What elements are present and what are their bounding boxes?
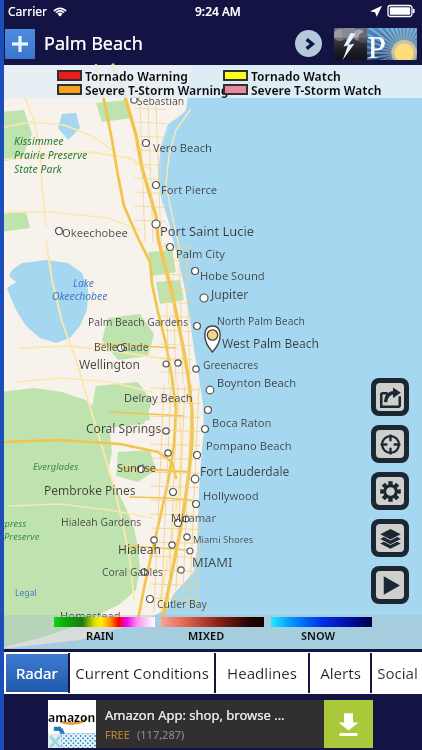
staticText: Pompano Beach	[206, 438, 292, 453]
staticText: Fort Lauderdale	[200, 463, 290, 479]
button[interactable]: Add location	[5, 29, 35, 59]
staticText: Pembroke Pines	[44, 482, 136, 498]
staticText: Miramar	[171, 510, 216, 525]
staticText: (117,287)	[137, 727, 185, 742]
staticText: Belle Glade	[94, 340, 149, 354]
staticText: Legal	[15, 587, 37, 599]
staticText: Headlines	[227, 663, 297, 683]
staticText: Sebastian	[137, 94, 185, 108]
staticText: Preserve	[4, 530, 40, 543]
staticText: SNOW	[301, 628, 336, 643]
button[interactable]: Locate	[376, 430, 404, 458]
staticText: Severe T-Storm Watch	[251, 82, 382, 98]
staticText: Coral Springs	[86, 420, 162, 436]
staticText: Delray Beach	[124, 390, 193, 405]
button[interactable]: Radar	[6, 654, 68, 692]
staticText: Palm Beach Gardens	[88, 315, 189, 329]
staticText: Tornado Warning	[85, 68, 188, 84]
staticText: Tornado Watch	[251, 68, 341, 84]
staticText: Palm Beach	[44, 31, 143, 56]
staticText: Severe T-Storm Warning	[85, 82, 229, 98]
staticText: Jupiter	[211, 286, 249, 302]
staticText: FREE	[105, 727, 130, 742]
staticText: Hollywood	[203, 488, 259, 503]
staticText: Miami Shores	[193, 533, 254, 546]
button[interactable]: Weather logo	[334, 28, 417, 60]
staticText: Coral Gables	[102, 565, 163, 579]
staticText: North Palm Beach	[217, 314, 305, 328]
staticText: Prairie Preserve	[14, 148, 88, 162]
staticText: Lake	[73, 276, 94, 290]
staticText: Hobe Sound	[200, 268, 265, 283]
button[interactable]: Play	[376, 571, 404, 599]
staticText: 9:24 AM	[195, 3, 241, 19]
staticText: Okeechobee	[52, 289, 108, 303]
staticText: Radar	[16, 663, 58, 683]
staticText: Greenacres	[203, 358, 259, 372]
staticText: amazon	[48, 709, 96, 725]
staticText: Palm City	[176, 246, 225, 261]
staticText: Port Saint Lucie	[160, 222, 255, 240]
staticText: Current Conditions	[75, 663, 209, 683]
staticText: Cutler Bay	[157, 597, 207, 611]
staticText: Everglades	[33, 460, 79, 473]
staticText: Fort Pierce	[161, 182, 218, 197]
button[interactable]: Headlines	[216, 652, 308, 694]
staticText: Sunrise	[117, 460, 157, 475]
staticText: Carrier	[8, 3, 48, 19]
staticText: State Park	[14, 162, 62, 176]
button[interactable]: amazon	[48, 700, 373, 748]
staticText: ypress	[0, 517, 27, 530]
button[interactable]: Layers	[376, 524, 404, 552]
staticText: Alerts	[320, 663, 361, 683]
staticText: Wellington	[79, 356, 140, 372]
staticText: Social	[377, 663, 418, 683]
staticText: RAIN	[86, 628, 115, 643]
button[interactable]: Social	[372, 652, 422, 694]
staticText: Boca Raton	[212, 415, 272, 430]
staticText: Hialeah	[118, 541, 161, 557]
button[interactable]: Share	[376, 383, 404, 411]
button[interactable]: Alerts	[310, 652, 370, 694]
staticText: MIAMI	[192, 553, 233, 571]
button[interactable]: Settings	[376, 477, 404, 505]
staticText: West Palm Beach	[222, 335, 320, 351]
button[interactable]: Next	[295, 30, 322, 57]
staticText: Kissimmee	[14, 134, 64, 148]
staticText: MIXED	[188, 628, 225, 643]
staticText: Homestead	[60, 608, 121, 623]
staticText: P	[367, 28, 386, 58]
staticText: Amazon App: shop, browse ...	[105, 706, 285, 724]
staticText: Hialeah Gardens	[61, 515, 142, 529]
button[interactable]: Current Conditions	[70, 652, 214, 694]
staticText: Okeechobee	[62, 225, 128, 240]
staticText: Boynton Beach	[217, 375, 297, 390]
staticText: Vero Beach	[153, 140, 212, 155]
